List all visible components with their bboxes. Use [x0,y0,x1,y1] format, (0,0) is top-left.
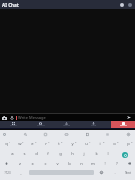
staticText: x [31,161,34,167]
staticText: 7 [89,140,91,143]
staticText: o [113,141,116,147]
button[interactable]: y [65,139,79,148]
staticText: 1 [9,140,11,143]
button[interactable]: d [30,149,42,158]
button[interactable]: Writing assistant [122,152,128,158]
button[interactable]: k [90,149,102,158]
button[interactable]: Stickers [41,130,49,138]
button[interactable]: l [102,149,114,158]
staticText: 5 [61,140,63,143]
button[interactable]: q [0,139,13,148]
staticText: Upload [63,124,71,127]
staticText: a [11,151,14,157]
button[interactable]: Backspace [123,159,135,168]
staticText: Write Message [18,115,46,120]
staticText: z [19,161,21,167]
staticText: . [114,170,116,176]
staticText: f [47,151,49,157]
button[interactable]: Send [123,114,135,121]
staticText: 0 [131,140,133,143]
button[interactable]: v [51,159,63,168]
staticText: 2 [22,140,24,143]
staticText: v [56,161,59,167]
button[interactable]: ?123 [0,168,14,177]
button[interactable]: f [42,149,54,158]
button[interactable]: s [18,149,30,158]
staticText: m [91,161,95,167]
staticText: r [45,141,47,147]
button[interactable]: ! [99,159,111,168]
staticText: h [71,151,74,157]
staticText: Camera [37,124,45,127]
staticText: u [85,141,88,147]
staticText: , [20,170,22,176]
button[interactable]: j [78,149,90,158]
button[interactable]: h [66,149,78,158]
staticText: Record [120,124,127,127]
staticText: k [95,151,98,157]
button[interactable]: z [13,159,26,168]
button[interactable]: g [54,149,66,158]
button[interactable]: n [75,159,87,168]
staticText: g [59,151,62,157]
button[interactable]: i [93,139,107,148]
staticText: l [107,151,109,157]
button[interactable]: e [26,139,39,148]
staticText: n [80,161,83,167]
staticText: 6 [75,140,77,143]
button[interactable]: Translate [103,130,111,138]
staticText: ? [116,161,118,167]
staticText: d [35,151,38,157]
button[interactable]: x [26,159,39,168]
staticText: 8 [103,140,105,143]
staticText: AI Chat [2,2,19,8]
button[interactable]: GIF [62,130,70,138]
staticText: w [18,141,22,147]
button[interactable]: c [39,159,51,168]
staticText: q [5,141,8,147]
staticText: e [31,141,34,147]
button[interactable]: Clipboard [83,130,91,138]
staticText: 4 [48,140,50,143]
staticText: 3 [35,140,37,143]
staticText: s [23,151,26,157]
button[interactable]: Add photo [1,114,8,121]
staticText: Voice [91,124,97,127]
button[interactable]: More options [126,1,134,9]
staticText: c [44,161,47,167]
button[interactable]: p [121,139,135,148]
button[interactable]: Next [121,168,135,177]
button[interactable]: Settings [124,130,132,138]
staticText: b [68,161,71,167]
staticText: ?123 [4,171,11,175]
staticText: Gallery [10,124,17,127]
button[interactable]: Gallery [0,121,27,128]
button[interactable]: m [87,159,99,168]
staticText: i [99,141,101,147]
staticText: y [71,141,74,147]
button[interactable]: Voice [80,121,107,128]
button[interactable]: Gboard menu [0,130,8,138]
button[interactable]: o [107,139,121,148]
button[interactable]: Camera [27,121,54,128]
button[interactable]: Emoji [95,168,108,177]
button[interactable]: Upload [53,121,80,128]
button[interactable]: Search [21,130,29,138]
button[interactable]: Shift [0,159,13,168]
button[interactable]: Voice input [8,114,15,121]
staticText: Next [125,171,131,175]
button[interactable]: a [6,149,18,158]
button[interactable]: Account [118,1,126,9]
button[interactable]: w [13,139,26,148]
button[interactable]: b [63,159,75,168]
staticText: p [127,141,130,147]
button[interactable]: ? [111,159,123,168]
button[interactable]: Record [111,121,135,128]
staticText: t [58,141,60,147]
button[interactable]: r [39,139,52,148]
button[interactable]: t [52,139,65,148]
button[interactable]: u [79,139,93,148]
